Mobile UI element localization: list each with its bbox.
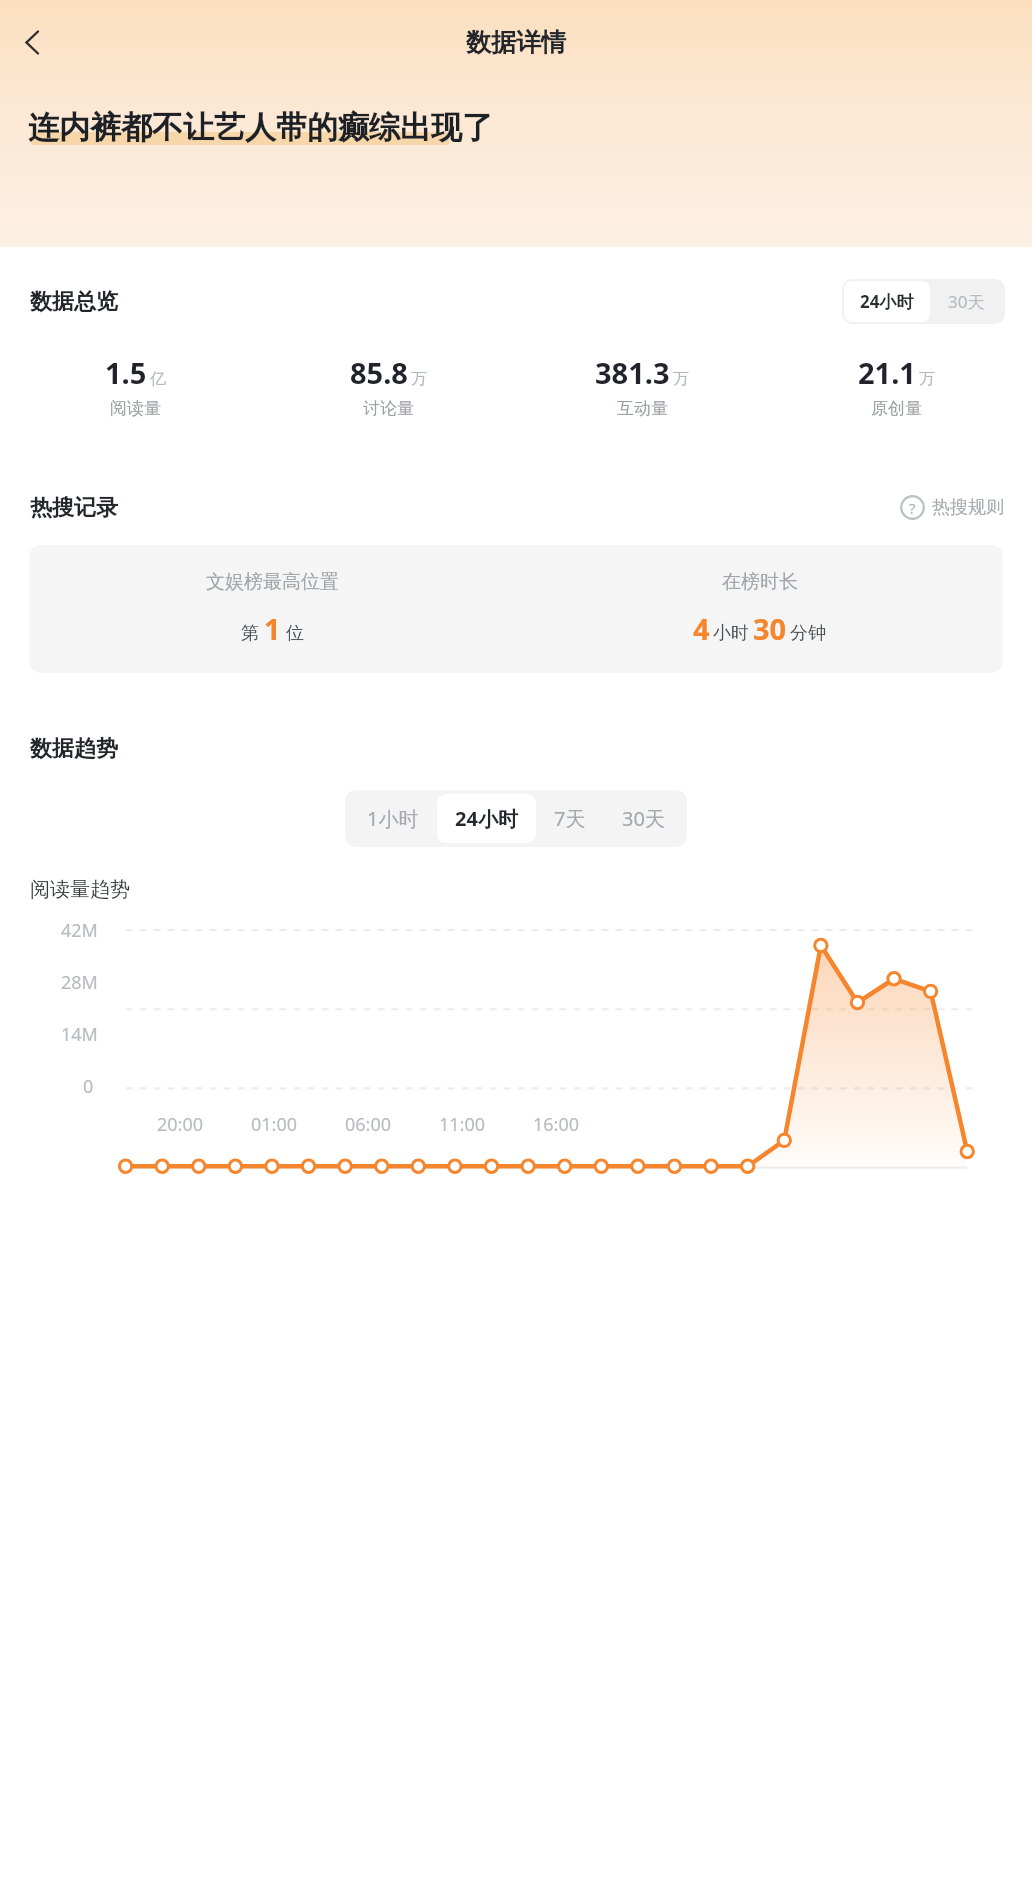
staticText: 11:00 <box>439 1112 486 1137</box>
staticText: 30天 <box>622 805 665 832</box>
staticText: 原创量 <box>871 398 922 419</box>
staticText: 讨论量 <box>363 398 414 419</box>
staticText: 阅读量趋势 <box>30 877 130 902</box>
staticText: 在榜时长 <box>722 570 798 594</box>
staticText: 万 <box>673 369 689 389</box>
staticText: 28M <box>61 970 98 995</box>
staticText: 互动量 <box>617 398 668 419</box>
staticText: 亿 <box>150 369 166 389</box>
staticText: 第 <box>241 622 259 645</box>
staticText: 7天 <box>554 805 586 832</box>
staticText: 85.8 <box>350 353 408 392</box>
staticText: 连内裤都不让艺人带的癫综出现了 <box>28 108 493 147</box>
staticText: 0 <box>83 1074 94 1099</box>
staticText: 01:00 <box>251 1112 298 1137</box>
staticText: 4 <box>693 609 710 648</box>
staticText: 分钟 <box>790 622 826 645</box>
staticText: 1小时 <box>367 805 419 832</box>
staticText: 21.1 <box>858 353 916 392</box>
staticText: 万 <box>919 369 935 389</box>
button[interactable]: 7天 <box>536 794 604 843</box>
staticText: 06:00 <box>345 1112 392 1137</box>
staticText: 16:00 <box>533 1112 580 1137</box>
staticText: 1.5 <box>105 353 147 392</box>
staticText: 位 <box>286 622 304 645</box>
staticText: 381.3 <box>595 353 670 392</box>
staticText: 数据详情 <box>466 27 566 58</box>
staticText: 小时 <box>713 622 749 645</box>
button[interactable]: 30天 <box>604 794 683 843</box>
staticText: 20:00 <box>157 1112 204 1137</box>
staticText: 14M <box>61 1022 98 1047</box>
staticText: 万 <box>411 369 427 389</box>
button[interactable]: 30天 <box>930 281 1003 322</box>
button[interactable]: ? <box>897 491 1007 524</box>
staticText: 30 <box>753 609 787 648</box>
staticText: 1 <box>264 609 281 648</box>
staticText: 42M <box>61 918 98 943</box>
button[interactable]: 1小时 <box>349 794 437 843</box>
staticText: 热搜规则 <box>932 496 1004 519</box>
button[interactable]: Back <box>5 15 59 69</box>
button[interactable]: 24小时 <box>437 794 536 843</box>
staticText: 阅读量 <box>110 398 161 419</box>
staticText: 文娱榜最高位置 <box>206 570 339 594</box>
staticText: 数据趋势 <box>30 735 118 763</box>
staticText: 数据总览 <box>30 288 118 316</box>
staticText: 24小时 <box>860 290 914 313</box>
staticText: 24小时 <box>455 805 518 832</box>
staticText: 热搜记录 <box>30 494 118 522</box>
staticText: 30天 <box>948 290 985 313</box>
staticText: ? <box>909 498 916 518</box>
button[interactable]: 24小时 <box>844 281 930 322</box>
